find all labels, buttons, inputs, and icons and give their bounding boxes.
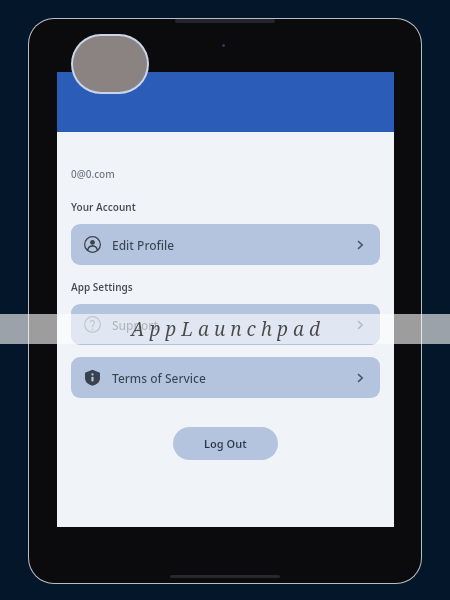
staticText: Terms of Service bbox=[112, 370, 206, 386]
button[interactable]: Support bbox=[71, 304, 380, 345]
staticText: Log Out bbox=[204, 436, 247, 451]
button[interactable]: Terms of Service bbox=[71, 357, 380, 398]
staticText: A p p L a u n c h p a d bbox=[131, 316, 320, 342]
button[interactable]: Edit Profile bbox=[71, 224, 380, 265]
staticText: App Settings bbox=[71, 280, 133, 294]
button[interactable]: Log Out bbox=[173, 427, 278, 460]
staticText: Edit Profile bbox=[112, 237, 175, 253]
staticText: Support bbox=[112, 317, 159, 333]
staticText: 0@0.com bbox=[71, 167, 115, 181]
staticText: Your Account bbox=[71, 200, 136, 214]
